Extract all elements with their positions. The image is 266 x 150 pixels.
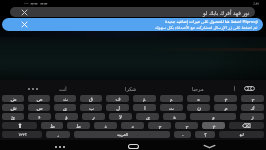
button[interactable]: ر [82,113,105,120]
button[interactable]: ض [2,95,24,102]
staticText: ح [251,96,255,102]
other: Close [22,10,27,15]
button[interactable]: د [121,122,144,129]
staticText: م [224,105,228,111]
button[interactable]: لا [109,113,132,120]
staticText: ك [250,105,255,111]
staticText: و [212,114,215,120]
button[interactable]: أنت [43,83,83,94]
staticText: ٪٨٢ [253,1,260,6]
staticText: غ [143,96,146,102]
staticText: ، [57,132,59,138]
staticText: ؟١٢٣ [18,132,27,137]
button[interactable]: ز [240,113,264,120]
button[interactable]: ط [67,122,90,129]
button[interactable]: Home [122,142,145,150]
staticText: خ [212,123,216,129]
button[interactable]: العربية [74,131,170,138]
staticText: ؤ [65,114,68,120]
button[interactable]: ح [175,122,198,129]
staticText: د [131,123,134,129]
button[interactable]: ل [106,104,129,111]
staticText: ش [10,105,17,111]
button[interactable]: ؤ [55,113,78,120]
staticText: نور فهد أفرك بابك لو [203,9,250,16]
staticText: ق [89,96,93,102]
staticText: ي [63,105,67,111]
staticText: لا [119,114,122,120]
button[interactable]: Keyboard settings [239,83,259,94]
staticText: ه [197,96,200,102]
button[interactable]: ؟١٢٣ [2,131,42,138]
button[interactable]: More options [23,83,43,94]
button[interactable]: ة [163,113,186,120]
staticText: ⬆ [17,122,23,129]
staticText: ى [146,114,150,120]
button[interactable]: ق [80,95,102,102]
button[interactable]: ك [241,104,264,111]
button[interactable]: اضغط هنا للحصول على ميزات إضافية جديدة F… [2,18,263,31]
button[interactable]: ئ [2,113,24,120]
button[interactable]: ش [2,104,24,111]
button[interactable]: ⬆ [2,122,37,129]
button[interactable]: شكرا [111,83,151,94]
button[interactable]: Back [198,142,220,150]
button[interactable]: ف [106,95,129,102]
staticText: ة [173,114,176,120]
staticText: ر [92,114,95,120]
staticText: ب [89,105,94,111]
button[interactable]: . [174,131,191,138]
button[interactable]: ا [133,104,156,111]
staticText: ص [36,96,43,102]
button[interactable]: ذ [94,122,117,129]
staticText: ⌫ [242,122,251,129]
button[interactable]: ح [241,95,264,102]
staticText: أنت [59,86,67,92]
staticText: ئ [11,114,15,120]
button[interactable]: ؟ [195,131,215,138]
staticText: العربية [117,132,128,137]
staticText: خ [224,96,228,102]
staticText: ح [185,123,189,129]
staticText: ثم اضغط على زر الإرسال لمشاركته مع الأصد… [155,25,258,31]
button[interactable]: ي [54,104,76,111]
staticText: ث [63,96,68,102]
button[interactable]: ⌫ [229,122,264,129]
button[interactable]: Recent apps [49,142,71,150]
button[interactable]: خ [214,95,237,102]
button[interactable]: ص [28,95,50,102]
staticText: ↵ [239,131,245,138]
button[interactable]: ج [148,122,171,129]
staticText: ض [10,96,17,102]
button[interactable]: ، [46,131,70,138]
staticText: اضغط هنا للحصول على ميزات إضافية جديدة F… [165,19,258,25]
button[interactable]: س [28,104,50,111]
staticText: ز [251,114,254,120]
button[interactable]: ى [136,113,159,120]
button[interactable]: ب [80,104,102,111]
button[interactable]: ن [187,104,210,111]
button[interactable]: خ [202,122,225,129]
button[interactable]: ه [187,95,210,102]
button[interactable]: ظ [41,122,63,129]
staticText: ع [170,96,173,102]
staticText: ••• ▬▬ ▬▬ [24,1,48,6]
staticText: ل [116,105,120,111]
button[interactable]: ↵ [219,131,264,138]
button[interactable]: ت [160,104,183,111]
button[interactable]: م [214,104,237,111]
button[interactable]: نور فهد أفرك بابك لو [10,7,255,17]
button[interactable]: غ [133,95,156,102]
button[interactable]: ء [28,113,51,120]
staticText: . [182,131,184,138]
staticText: س [36,105,43,111]
button[interactable]: ع [160,95,183,102]
button[interactable]: مرحبا [178,83,218,94]
staticText: ط [76,123,81,129]
button[interactable]: ث [54,95,76,102]
staticText: ا [144,105,146,111]
button[interactable]: و [190,113,236,120]
staticText: مرحبا [192,86,204,92]
staticText: ت [169,105,174,111]
other: Dismiss [22,22,27,27]
